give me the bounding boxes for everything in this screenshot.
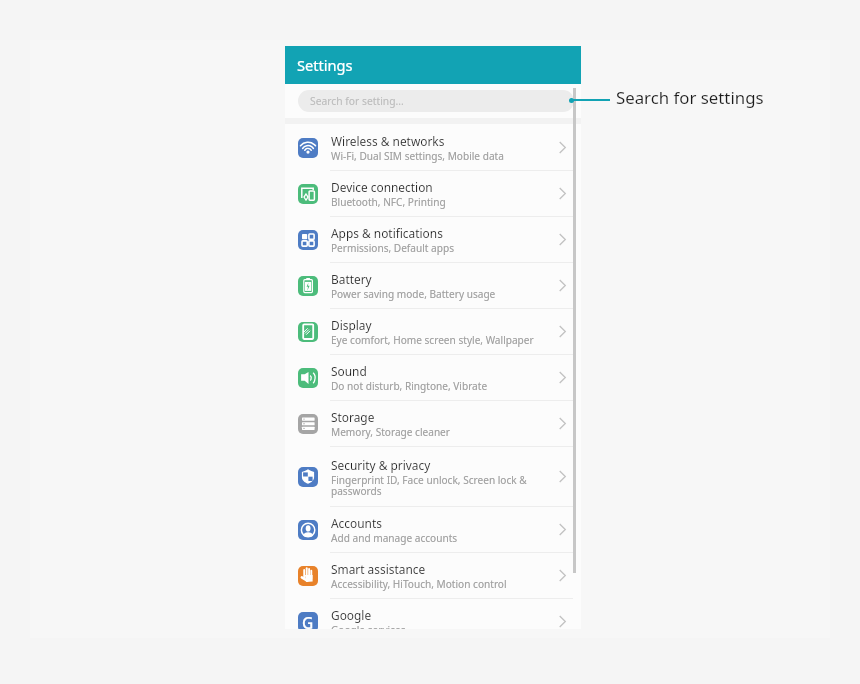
staticText: Accessibility, HiTouch, Motion control [331, 577, 507, 591]
staticText: Power saving mode, Battery usage [331, 287, 496, 301]
staticText: Eye comfort, Home screen style, Wallpape… [331, 333, 534, 347]
staticText: Do not disturb, Ringtone, Vibrate [331, 379, 488, 393]
staticText: Apps & notifications [331, 225, 443, 241]
staticText: Bluetooth, NFC, Printing [331, 195, 446, 209]
button[interactable]: Storage [285, 401, 581, 447]
staticText: Storage [331, 409, 375, 425]
staticText: Fingerprint ID, Face unlock, Screen lock… [331, 473, 527, 498]
staticText: Display [331, 317, 372, 333]
button[interactable]: Apps & notifications [285, 217, 581, 263]
button[interactable]: Device connection [285, 171, 581, 217]
button[interactable]: Display [285, 309, 581, 355]
button[interactable]: Settings [285, 46, 581, 84]
staticText: G [302, 612, 314, 629]
staticText: Device connection [331, 179, 433, 195]
staticText: Memory, Storage cleaner [331, 425, 450, 439]
button[interactable]: G [285, 599, 581, 629]
button[interactable]: Sound [285, 355, 581, 401]
button[interactable]: Accounts [285, 507, 581, 553]
staticText: Wireless & networks [331, 133, 445, 149]
staticText: Google [331, 607, 372, 623]
staticText: Settings [297, 55, 353, 75]
staticText: Sound [331, 363, 367, 379]
staticText: Security & privacy [331, 457, 431, 473]
staticText: Search for settings [616, 86, 764, 109]
staticText: Permissions, Default apps [331, 241, 455, 255]
button[interactable]: Search for setting... [298, 90, 574, 112]
staticText: Wi-Fi, Dual SIM settings, Mobile data [331, 149, 504, 163]
button[interactable]: Security & privacy [285, 447, 581, 507]
staticText: Smart assistance [331, 561, 426, 577]
button[interactable]: Wireless & networks [285, 125, 581, 171]
staticText: Add and manage accounts [331, 531, 458, 545]
staticText: Accounts [331, 515, 382, 531]
button[interactable]: Smart assistance [285, 553, 581, 599]
staticText: Google services [331, 623, 406, 629]
button[interactable]: Battery [285, 263, 581, 309]
staticText: Battery [331, 271, 372, 287]
staticText: Search for setting... [310, 94, 404, 108]
